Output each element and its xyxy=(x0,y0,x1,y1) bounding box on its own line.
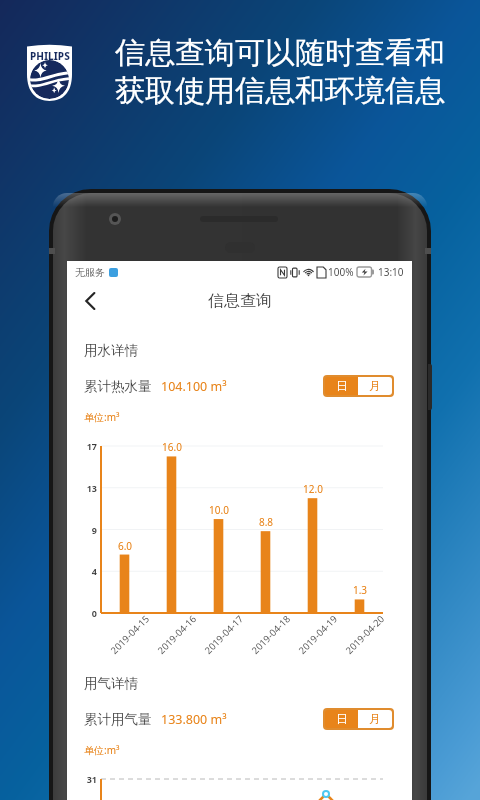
button[interactable]: 月 xyxy=(358,710,392,728)
button[interactable]: 日 xyxy=(325,377,358,395)
staticText: 16.0 xyxy=(158,440,186,454)
staticText: 1.3 xyxy=(346,583,374,597)
staticText: 获取使用信息和环境信息 xyxy=(115,72,445,110)
staticText: 2019-04-16 xyxy=(155,612,199,657)
staticText: 累计热水量 xyxy=(84,378,152,395)
staticText: 2019-04-19 xyxy=(296,612,340,657)
staticText: 0 xyxy=(79,607,97,619)
staticText: 8.8 xyxy=(252,515,280,529)
button[interactable]: 月 xyxy=(358,377,392,395)
staticText: 单位:m³ xyxy=(84,410,120,424)
staticText: 2019-04-18 xyxy=(249,612,293,657)
staticText: 17 xyxy=(79,440,97,452)
staticText: 日 xyxy=(336,712,348,726)
staticText: 100% xyxy=(328,265,354,279)
staticText: 13:10 xyxy=(378,265,404,279)
staticText: 9 xyxy=(79,524,97,536)
staticText: 6.0 xyxy=(111,539,139,553)
button[interactable]: Back xyxy=(75,286,105,316)
staticText: 104.100 m³ xyxy=(161,378,227,395)
staticText: 月 xyxy=(369,379,381,393)
staticText: 13 xyxy=(79,482,97,494)
staticText: 日 xyxy=(336,379,348,393)
staticText: 10.0 xyxy=(205,503,233,517)
staticText: PHILIPS xyxy=(30,49,70,63)
staticText: 133.800 m³ xyxy=(161,711,227,728)
staticText: 信息查询可以随时查看和 xyxy=(115,34,445,72)
staticText: 2019-04-15 xyxy=(108,612,152,657)
staticText: 无服务 xyxy=(75,266,105,279)
staticText: 用水详情 xyxy=(84,342,138,359)
staticText: 4 xyxy=(79,565,97,577)
staticText: 12.0 xyxy=(299,482,327,496)
staticText: 累计用气量 xyxy=(84,711,152,728)
button[interactable]: 日 xyxy=(325,710,358,728)
staticText: 单位:m³ xyxy=(84,743,120,757)
staticText: 2019-04-20 xyxy=(343,612,387,657)
staticText: 用气详情 xyxy=(84,675,138,692)
staticText: 信息查询 xyxy=(208,291,272,311)
staticText: 31 xyxy=(79,773,97,785)
staticText: 2019-04-17 xyxy=(202,612,246,657)
staticText: 月 xyxy=(369,712,381,726)
